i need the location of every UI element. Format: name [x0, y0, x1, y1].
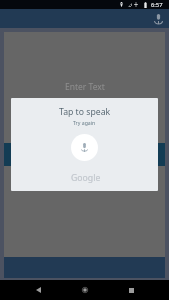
button[interactable]: Speak — [4, 143, 165, 166]
staticText: Try again — [73, 119, 96, 126]
staticText: 6:57 — [151, 1, 163, 9]
staticText: Enter Text — [65, 81, 105, 93]
button[interactable]: Home — [73, 280, 97, 300]
button[interactable]: Recents — [119, 280, 143, 300]
staticText: Google — [71, 172, 101, 184]
button[interactable]: Voice input — [151, 12, 165, 26]
button[interactable]: Speak — [71, 134, 98, 161]
button[interactable]: Back — [26, 280, 50, 300]
staticText: Tap to speak — [59, 106, 111, 118]
